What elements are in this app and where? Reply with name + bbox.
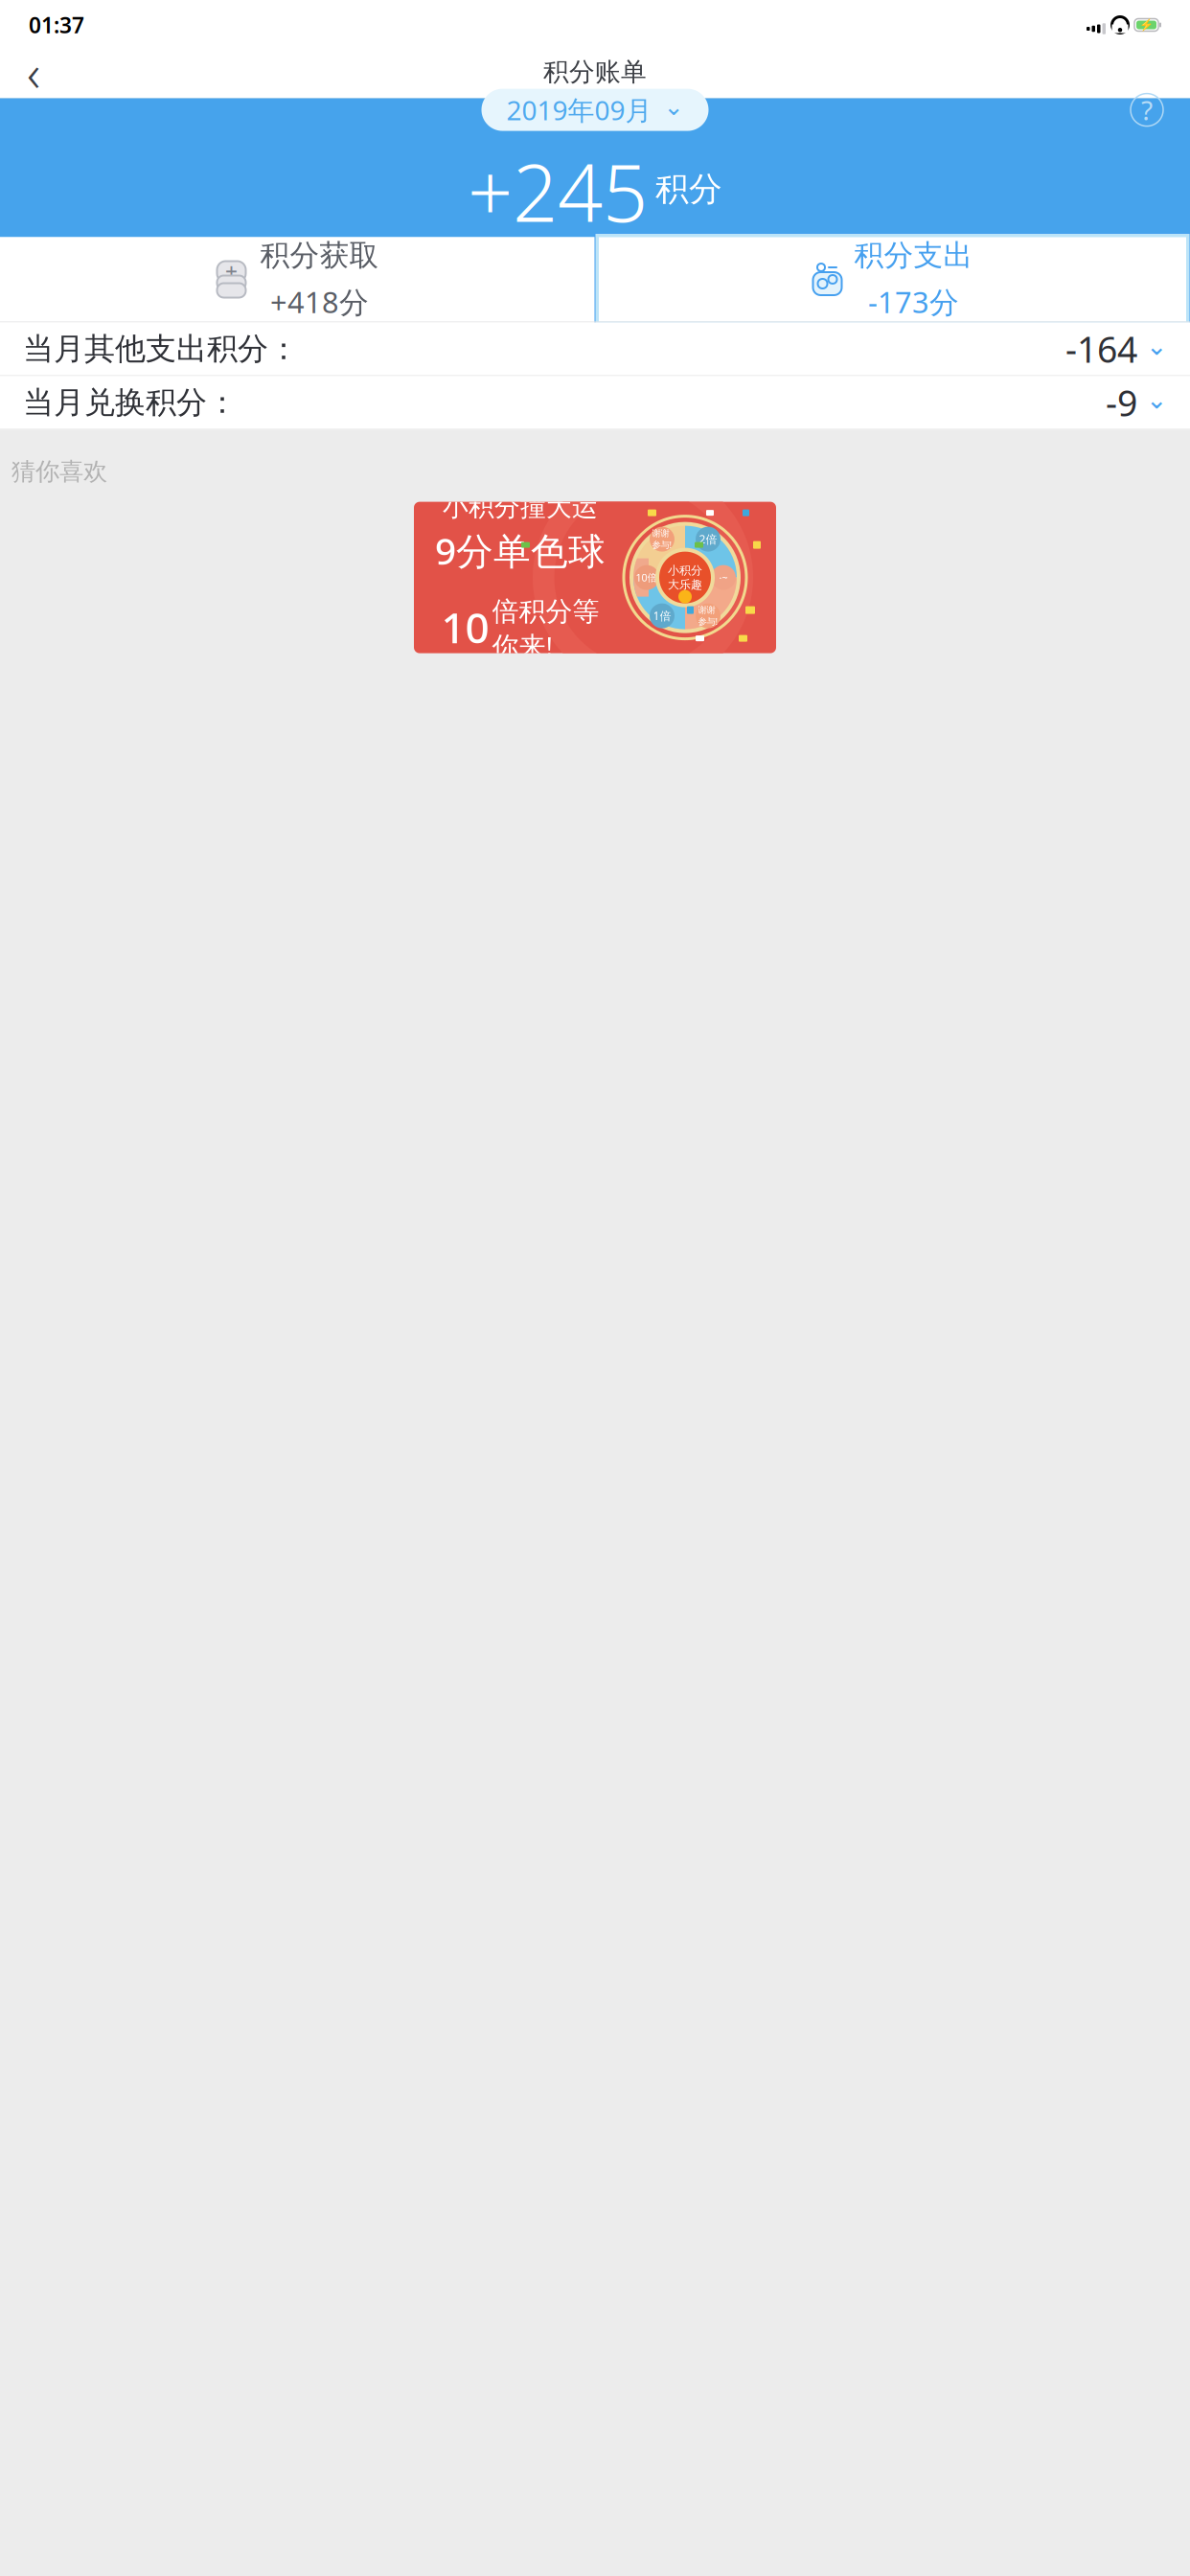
staticText: ⌄ [1146, 385, 1167, 414]
staticText: 倍积分等你来! [492, 595, 599, 664]
button[interactable]: Help [1131, 94, 1163, 126]
staticText: ⌄ [1146, 331, 1167, 361]
staticText: ·~ [719, 571, 728, 584]
staticText: 积分账单 [543, 56, 647, 88]
button[interactable]: 积分支出 [595, 233, 1190, 325]
staticText: +245 [468, 139, 648, 244]
staticText: 当月其他支出积分： [23, 330, 299, 368]
staticText: 大乐趣 [668, 577, 702, 592]
staticText: 积分 [655, 169, 722, 210]
staticText: -9 [1106, 379, 1137, 426]
staticText: ⚡ [1139, 18, 1154, 31]
staticText: 谢谢 参与! [698, 604, 718, 627]
button[interactable]: 当月其他支出积分： [0, 322, 1190, 375]
staticText: 2倍 [699, 531, 717, 547]
staticText: 2019年09月 [506, 92, 652, 128]
button[interactable]: + [0, 237, 595, 322]
staticText: ⌄ [664, 93, 684, 120]
staticText: + [225, 257, 238, 286]
staticText: 小积分撞大运 [443, 491, 598, 523]
staticText: 积分支出 [854, 237, 973, 274]
staticText: ‹ [27, 38, 40, 106]
staticText: 当月兑换积分： [23, 384, 238, 421]
staticText: 积分获取 [260, 237, 379, 274]
staticText: 谢谢 参与! [652, 528, 672, 551]
staticText: 9分单色球 [435, 526, 606, 575]
staticText: 10 [441, 599, 489, 655]
staticText: 01:37 [29, 10, 84, 39]
staticText: 10倍 [636, 571, 658, 584]
staticText: +418分 [270, 282, 369, 321]
button[interactable]: 当月兑换积分： [0, 376, 1190, 429]
staticText: 猜你喜欢 [11, 457, 107, 486]
staticText: -164 [1065, 325, 1137, 373]
staticText: ? [1141, 92, 1153, 128]
button[interactable]: Back [8, 46, 59, 98]
button[interactable]: 2019年09月 [481, 89, 709, 131]
staticText: 1倍 [653, 608, 671, 623]
staticText: 小积分 [668, 563, 702, 577]
button[interactable]: 小积分撞大运 [414, 502, 776, 653]
staticText: -173分 [868, 282, 959, 321]
